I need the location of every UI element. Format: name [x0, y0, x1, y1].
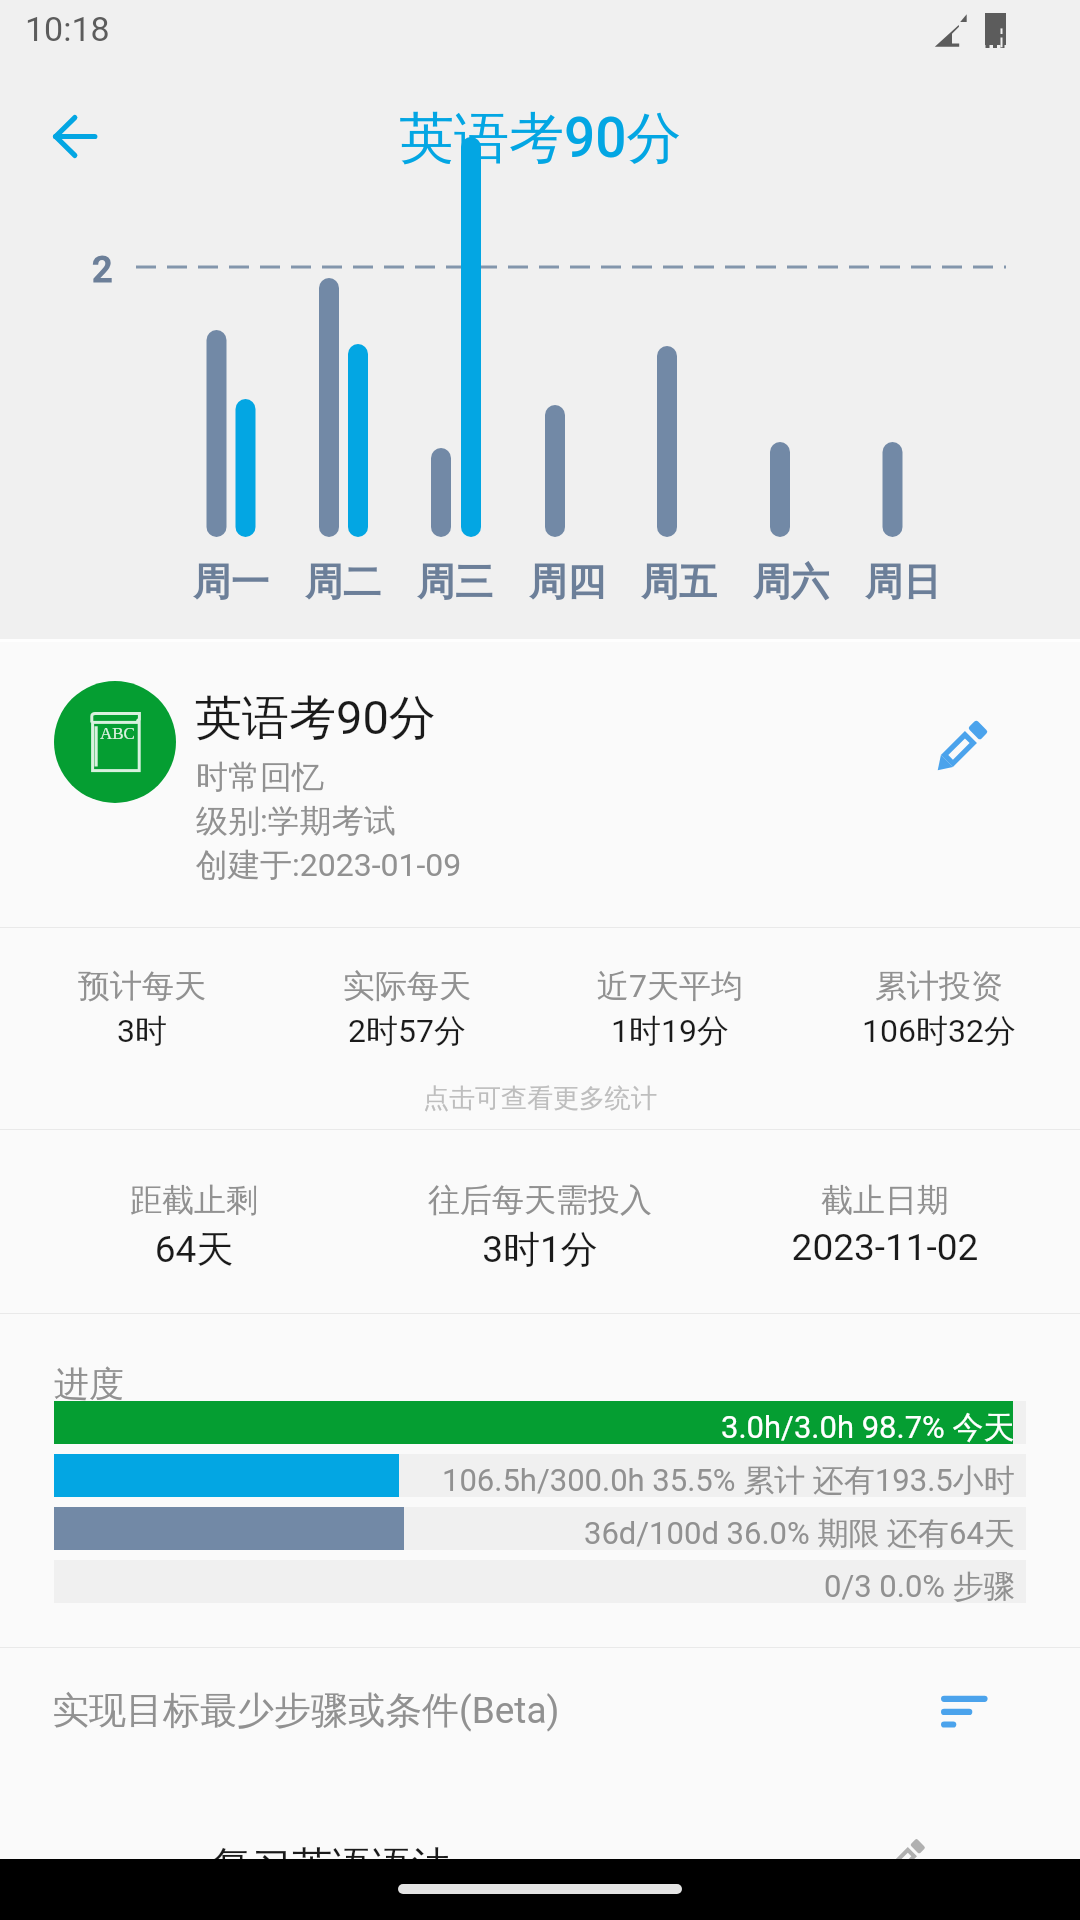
staticText: 复习英语语法: [212, 1841, 452, 1891]
button[interactable]: 实现目标最少步骤或条件(Beta): [0, 1648, 1080, 1790]
staticText: 英语考90分: [195, 689, 436, 748]
button[interactable]: 进度: [0, 1314, 1080, 1647]
staticText: 进度: [54, 1362, 124, 1406]
button[interactable]: Back: [29, 91, 119, 181]
staticText: 3时: [0, 1011, 392, 1051]
staticText: 0/3 0.0% 步骤: [824, 1567, 1015, 1606]
staticText: 实际每天: [157, 966, 657, 1006]
staticText: 2: [92, 249, 113, 291]
staticText: 周一: [0, 558, 481, 606]
button[interactable]: Sort: [895, 1654, 1030, 1774]
staticText: 周二: [93, 558, 593, 606]
staticText: 周日: [653, 558, 1080, 606]
staticText: 周六: [541, 558, 1041, 606]
staticText: 时常回忆: [196, 757, 324, 797]
staticText: 106时32分: [689, 1011, 1080, 1051]
button[interactable]: 复习英语语法: [0, 1791, 1080, 1920]
staticText: 106.5h/300.0h 35.5% 累计 还有193.5小时: [442, 1461, 1015, 1500]
button[interactable]: Edit: [886, 683, 1033, 813]
staticText: 近7天平均: [420, 966, 920, 1006]
staticText: 1时19分: [420, 1011, 920, 1051]
staticText: 点击可查看更多统计: [290, 1082, 790, 1115]
staticText: 截止日期: [635, 1180, 1080, 1220]
staticText: 周五: [429, 558, 929, 606]
staticText: 周四: [317, 558, 817, 606]
staticText: 实现目标最少步骤或条件(Beta): [52, 1687, 560, 1734]
staticText: 10:18: [25, 9, 110, 49]
staticText: ABC: [100, 724, 135, 743]
staticText: 2023-11-02: [635, 1226, 1080, 1269]
staticText: 往后每天需投入: [290, 1180, 790, 1220]
button[interactable]: ABC: [0, 642, 1080, 927]
staticText: 英语考90分: [399, 104, 682, 173]
button[interactable]: 预计每天: [0, 928, 1080, 1129]
staticText: 3时1分: [290, 1226, 790, 1273]
staticText: 36d/100d 36.0% 期限 还有64天: [584, 1514, 1015, 1553]
staticText: 3.0h/3.0h 98.7% 今天: [721, 1408, 1015, 1447]
staticText: 64天: [0, 1226, 444, 1273]
button[interactable]: 距截止剩: [0, 1130, 1080, 1313]
staticText: 累计投资: [689, 966, 1080, 1006]
staticText: 预计每天: [0, 966, 392, 1006]
staticText: 级别:学期考试: [196, 801, 396, 841]
staticText: 周三: [205, 558, 705, 606]
staticText: 创建于:2023-01-09: [196, 845, 462, 885]
staticText: 距截止剩: [0, 1180, 444, 1220]
staticText: 2时57分: [157, 1011, 657, 1051]
